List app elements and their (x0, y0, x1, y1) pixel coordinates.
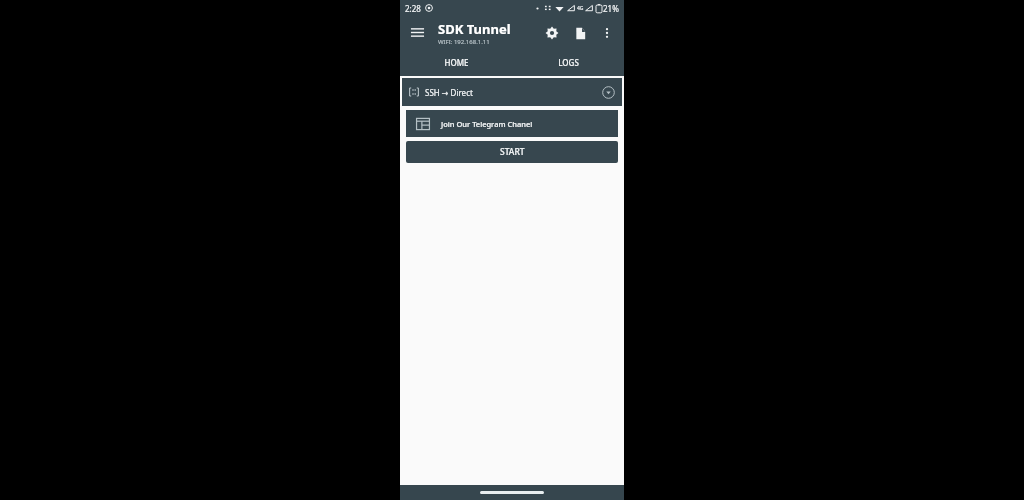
staticText: SSH → Direct (425, 87, 473, 98)
staticText: START (500, 146, 525, 158)
staticText: Join Our Telegram Chanel (441, 119, 533, 129)
staticText: LOGS (558, 57, 579, 68)
button[interactable]: SSH → Direct (402, 78, 622, 106)
button[interactable]: START (406, 141, 618, 163)
button[interactable]: Join Our Telegram Chanel (406, 110, 618, 137)
staticText: 2:28 (405, 3, 421, 14)
staticText: HOME (444, 57, 469, 68)
staticText: WIFI: 192.168.1.11 (438, 38, 490, 46)
staticText: 21% (603, 3, 619, 14)
button[interactable]: Home gesture bar (480, 491, 544, 494)
staticText: 4G (577, 5, 584, 12)
button[interactable]: Logs file (566, 19, 594, 47)
button[interactable]: Open navigation drawer (400, 16, 434, 49)
staticText: SDK Tunnel (438, 20, 511, 38)
button[interactable]: HOME (400, 49, 512, 76)
button[interactable]: More options (594, 20, 620, 46)
button[interactable]: LOGS (512, 49, 624, 76)
button[interactable]: Settings (538, 19, 566, 47)
